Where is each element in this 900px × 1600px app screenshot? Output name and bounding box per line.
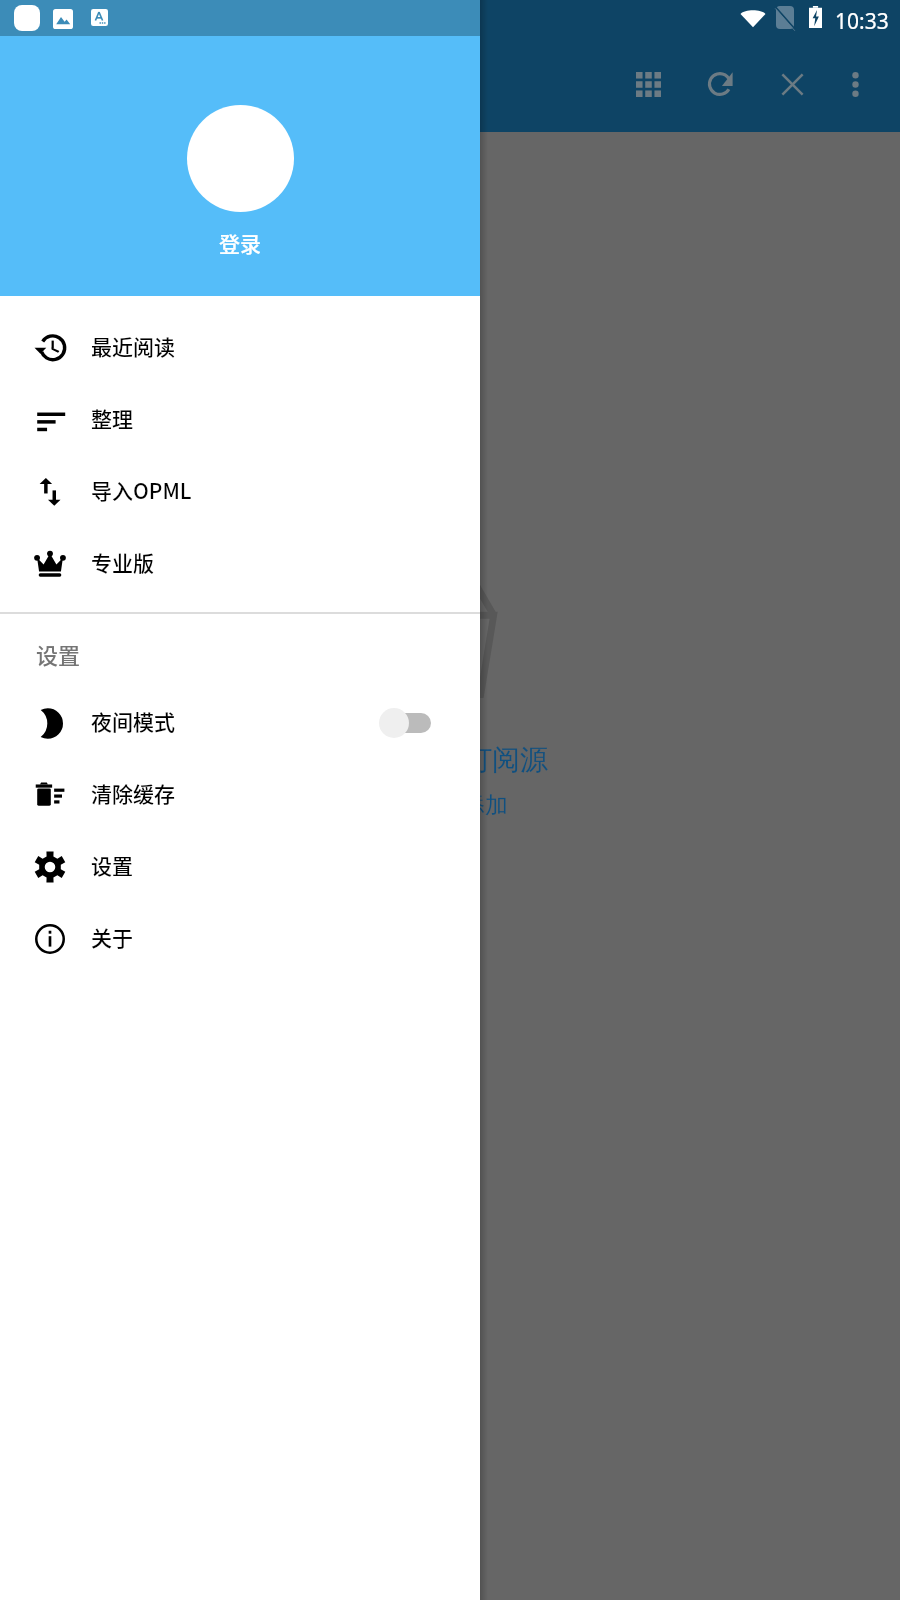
button[interactable]: Close: [756, 48, 828, 120]
staticText: 设置: [91, 850, 133, 880]
button[interactable]: More options: [819, 48, 891, 120]
staticText: 导入OPML: [91, 475, 192, 505]
button[interactable]: 夜间模式: [0, 687, 480, 759]
button[interactable]: 清除缓存: [0, 759, 480, 831]
button[interactable]: 专业版: [0, 528, 480, 600]
button[interactable]: [379, 708, 431, 738]
button[interactable]: 点此去添加: [389, 791, 512, 820]
button[interactable]: Refresh: [684, 48, 756, 120]
staticText: 最近阅读: [91, 331, 175, 361]
staticText: 点此去添加: [393, 791, 508, 820]
button[interactable]: 整理: [0, 384, 480, 456]
staticText: 整理: [91, 403, 133, 433]
staticText: 设置: [36, 638, 81, 670]
button[interactable]: 最近阅读: [0, 312, 480, 384]
staticText: 关于: [91, 922, 133, 952]
button[interactable]: Grid view: [612, 48, 684, 120]
staticText: 登录: [219, 228, 261, 258]
staticText: 专业版: [91, 547, 154, 577]
button[interactable]: 导入OPML: [0, 456, 480, 528]
button[interactable]: 登录: [0, 36, 480, 296]
button[interactable]: 关于: [0, 903, 480, 975]
button[interactable]: 设置: [0, 831, 480, 903]
staticText: 清除缓存: [91, 778, 175, 808]
staticText: 10:33: [835, 7, 889, 36]
staticText: 夜间模式: [91, 706, 175, 736]
staticText: 你还没有订阅源: [352, 742, 548, 777]
